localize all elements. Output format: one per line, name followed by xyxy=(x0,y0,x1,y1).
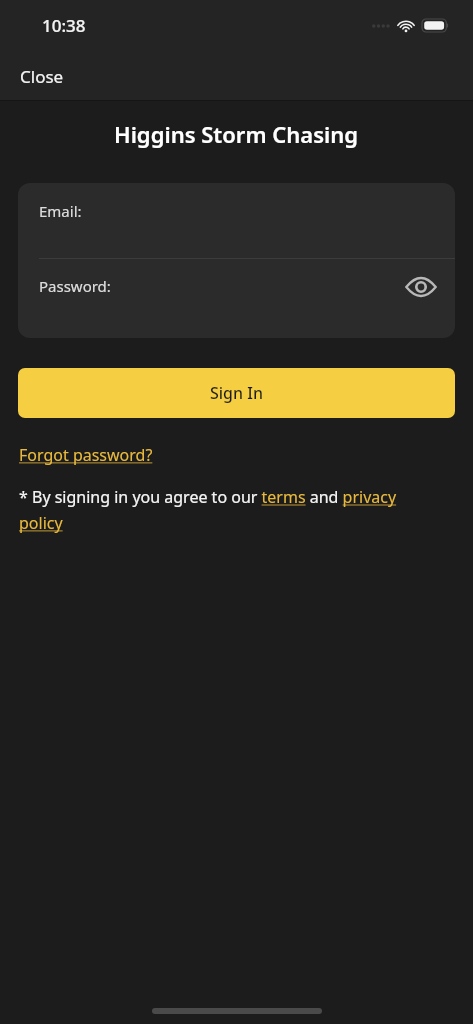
staticText: Sign In xyxy=(210,382,263,404)
button[interactable]: Password: xyxy=(18,259,455,338)
button[interactable]: Forgot password? xyxy=(19,444,153,466)
staticText: Close xyxy=(20,65,64,88)
button[interactable]: * By signing in you agree to our terms a… xyxy=(19,486,431,534)
button[interactable]: Sign In xyxy=(18,368,455,418)
staticText: 10:38 xyxy=(42,14,86,37)
staticText: Email: xyxy=(39,201,82,221)
button[interactable]: Close xyxy=(0,52,84,100)
staticText: Password: xyxy=(39,276,111,296)
button[interactable]: Email: xyxy=(18,183,455,258)
staticText: Higgins Storm Chasing xyxy=(114,119,359,149)
staticText: * By signing in you agree to our terms a… xyxy=(19,486,431,534)
button[interactable]: Show password xyxy=(403,269,439,305)
staticText: Forgot password? xyxy=(19,444,153,466)
